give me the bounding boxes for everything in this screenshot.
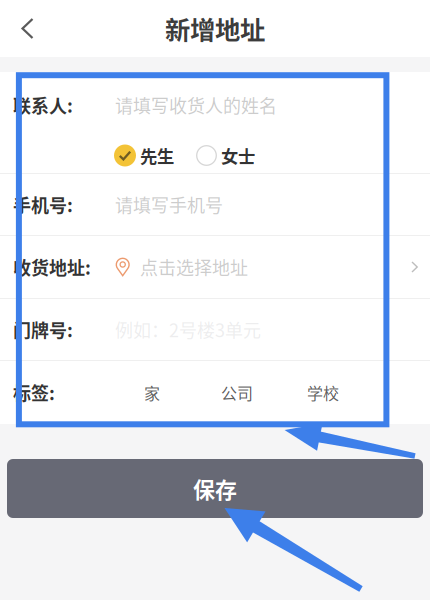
staticText: 先生 xyxy=(140,143,174,168)
button[interactable]: 家 xyxy=(144,381,160,404)
staticText: 请填写手机号 xyxy=(115,191,223,218)
staticText: 点击选择地址 xyxy=(140,254,248,280)
staticText: 家 xyxy=(144,381,160,404)
staticText: 保存 xyxy=(193,473,237,504)
button[interactable]: 公司 xyxy=(221,381,253,404)
staticText: 收货地址: xyxy=(13,254,91,280)
staticText: 例如：2号楼3单元 xyxy=(115,316,261,343)
staticText: 学校 xyxy=(307,381,339,404)
button[interactable]: 学校 xyxy=(307,381,339,404)
button[interactable]: 先生 xyxy=(114,143,174,168)
staticText: 请填写收货人的姓名 xyxy=(115,92,277,118)
button[interactable]: 女士 xyxy=(196,143,255,168)
button[interactable]: 收货地址: xyxy=(0,236,430,298)
staticText: 联系人: xyxy=(13,92,73,118)
button[interactable]: 返回 xyxy=(0,0,58,57)
staticText: 新增地址 xyxy=(165,10,265,47)
staticText: 手机号: xyxy=(13,191,73,218)
button[interactable]: 保存 xyxy=(7,459,423,518)
staticText: 公司 xyxy=(221,381,253,404)
staticText: 女士 xyxy=(221,143,255,168)
staticText: 标签: xyxy=(13,379,55,406)
staticText: 门牌号: xyxy=(13,316,73,343)
